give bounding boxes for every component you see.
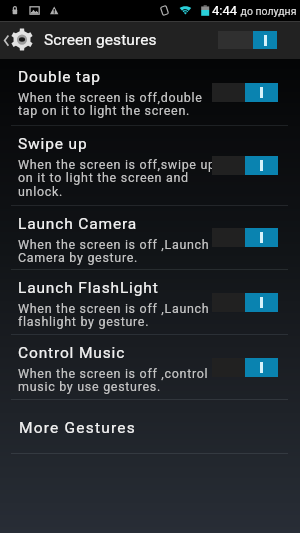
button[interactable]: Control Music bbox=[212, 358, 278, 377]
button[interactable]: Launch FlashLight bbox=[0, 270, 300, 334]
button[interactable]: Swipe up bbox=[0, 126, 300, 205]
button[interactable]: Swipe up bbox=[212, 156, 278, 175]
staticText: When the screen is off ,Launch flashligh… bbox=[18, 301, 210, 329]
staticText: 4:44 bbox=[212, 3, 238, 18]
staticText: When the screen is off,swipe up on it to… bbox=[18, 157, 216, 199]
staticText: When the screen is off,double tap on it … bbox=[18, 90, 203, 118]
button[interactable]: Launch Camera bbox=[0, 206, 300, 269]
button[interactable]: Launch FlashLight bbox=[212, 293, 278, 312]
button[interactable]: Double tap bbox=[212, 83, 278, 102]
button[interactable]: Double tap bbox=[0, 59, 300, 125]
staticText: Double tap bbox=[18, 68, 101, 86]
staticText: до полудня bbox=[238, 5, 297, 17]
staticText: Screen gestures bbox=[44, 31, 157, 49]
staticText: Control Music bbox=[18, 344, 126, 362]
staticText: Launch Camera bbox=[18, 215, 138, 233]
staticText: When the screen is off ,control music by… bbox=[18, 366, 209, 394]
staticText: Launch FlashLight bbox=[18, 279, 159, 297]
staticText: More Gestures bbox=[19, 419, 136, 437]
button[interactable]: More Gestures bbox=[0, 400, 300, 453]
button[interactable]: Launch Camera bbox=[212, 228, 278, 247]
button[interactable]: Screen gestures master switch bbox=[218, 31, 277, 49]
staticText: Swipe up bbox=[18, 135, 88, 153]
staticText: When the screen is off ,Launch Camera by… bbox=[18, 237, 210, 265]
button[interactable]: Navigate up bbox=[0, 21, 300, 59]
button[interactable]: Control Music bbox=[0, 335, 300, 399]
